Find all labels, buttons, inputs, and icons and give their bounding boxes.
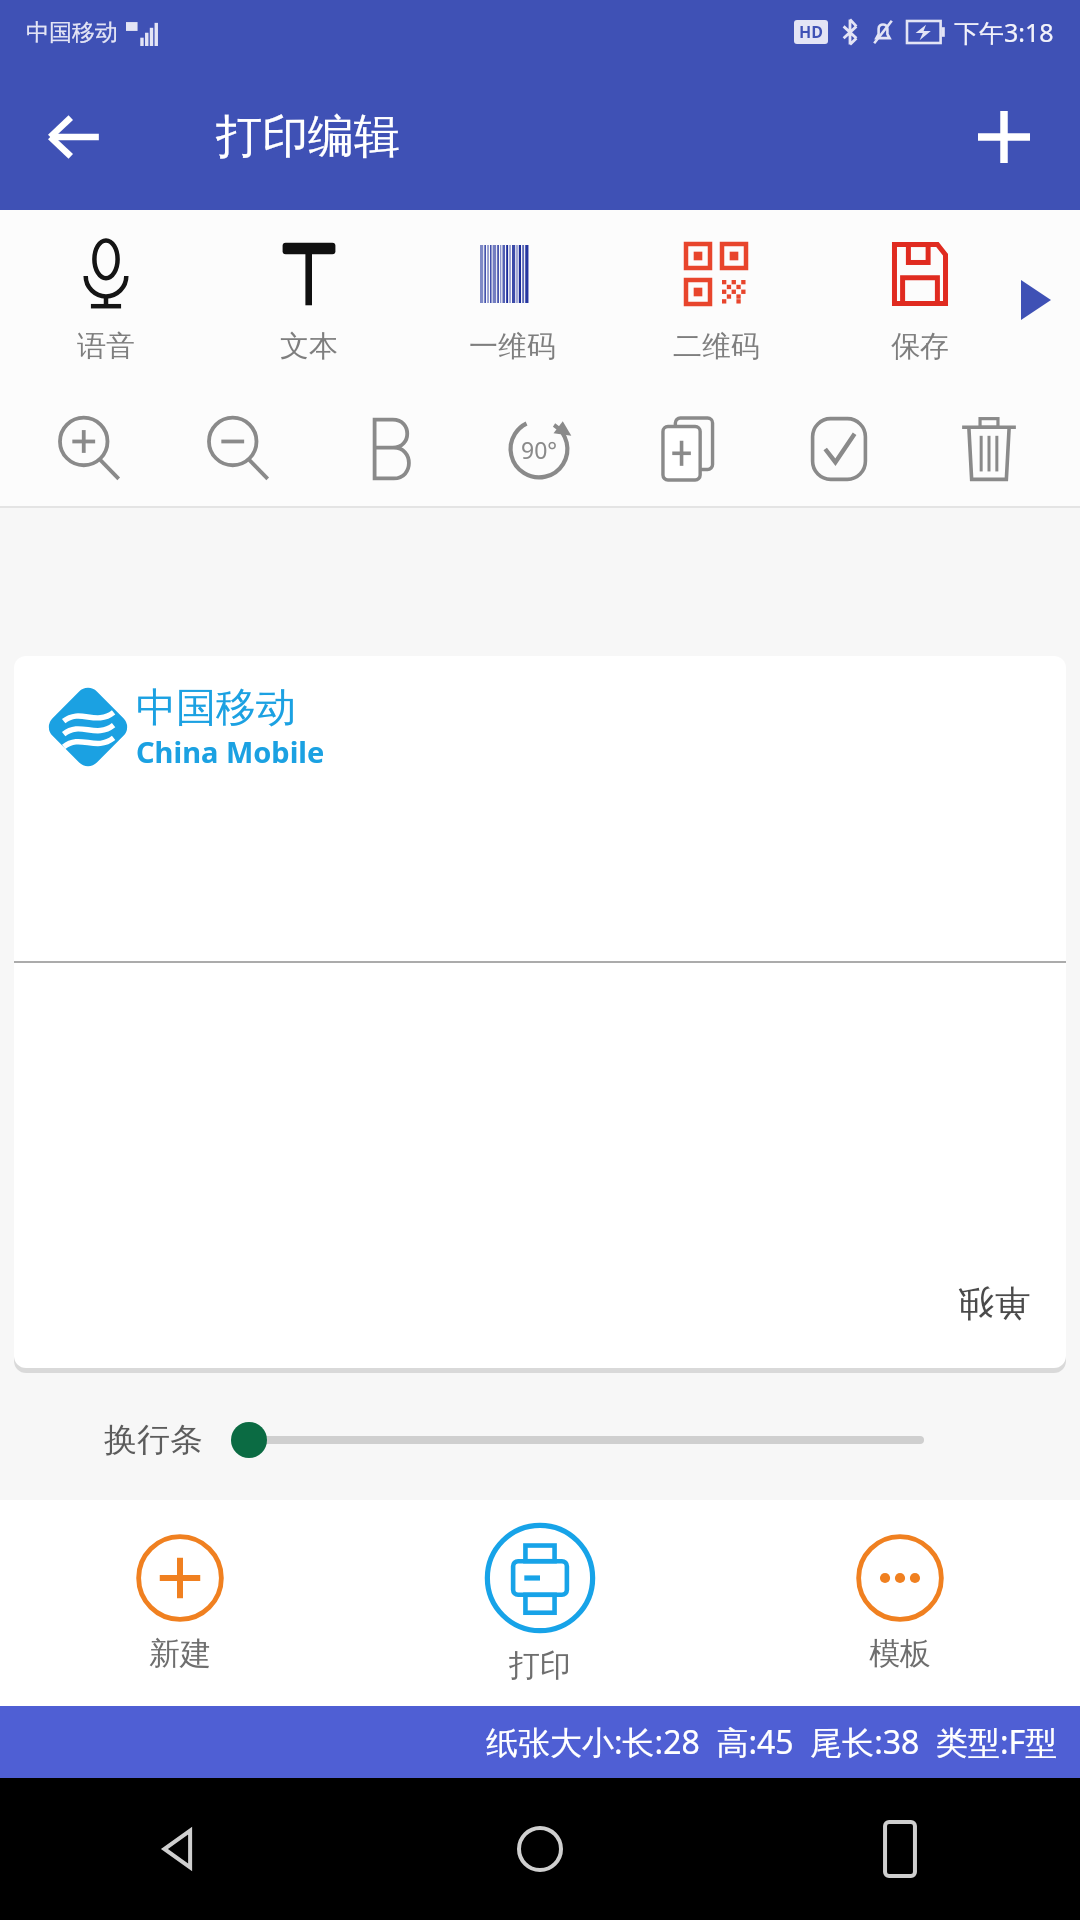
staticText: 一维码 [469, 328, 556, 365]
staticText: 中国移动 [136, 682, 296, 732]
button[interactable]: 一维码 [410, 210, 614, 390]
staticText: 换行条 [104, 1419, 203, 1461]
button[interactable]: Home [360, 1778, 720, 1920]
staticText: 文本 [280, 328, 338, 365]
button[interactable]: Bold [314, 390, 464, 508]
staticText: 90° [521, 434, 558, 465]
button[interactable]: Back [34, 97, 114, 177]
button[interactable] [231, 1417, 924, 1463]
staticText: 打印编辑 [216, 108, 400, 166]
button[interactable]: Add [964, 97, 1044, 177]
staticText: China Mobile [136, 732, 325, 771]
button[interactable]: 保存 [818, 210, 1022, 390]
button[interactable]: 二维码 [614, 210, 818, 390]
button[interactable]: 新建 [0, 1500, 360, 1706]
button[interactable]: 中国移动 [14, 656, 1066, 1368]
button[interactable]: Zoom out [165, 390, 314, 508]
staticText: HD [799, 21, 823, 43]
staticText: 下午3:18 [954, 15, 1054, 49]
staticText: 模板 [869, 1634, 931, 1673]
button[interactable]: 模板 [720, 1500, 1080, 1706]
button[interactable]: 打印 [360, 1500, 720, 1706]
button[interactable]: Back [0, 1778, 360, 1920]
staticText: 单独 [958, 1281, 1030, 1326]
button[interactable]: Delete [914, 390, 1064, 508]
staticText: 二维码 [673, 328, 760, 365]
button[interactable]: More tools [1006, 270, 1066, 330]
button[interactable]: Rotate 90 degrees [464, 390, 614, 508]
staticText: 打印 [509, 1646, 571, 1685]
staticText: 中国移动 [26, 18, 118, 47]
button[interactable]: 纸张大小:长:28 高:45 尾长:38 类型:F型 [0, 1706, 1080, 1778]
button[interactable]: Confirm [764, 390, 914, 508]
button[interactable]: Duplicate [614, 390, 764, 508]
staticText: 新建 [149, 1634, 211, 1673]
button[interactable]: 文本 [207, 210, 410, 390]
staticText: 保存 [891, 328, 949, 365]
staticText: 纸张大小:长:28 高:45 尾长:38 类型:F型 [486, 1720, 1058, 1764]
button[interactable]: Recents [720, 1778, 1080, 1920]
button[interactable]: Zoom in [16, 390, 165, 508]
button[interactable]: 语音 [4, 210, 207, 390]
staticText: 语音 [77, 328, 135, 365]
